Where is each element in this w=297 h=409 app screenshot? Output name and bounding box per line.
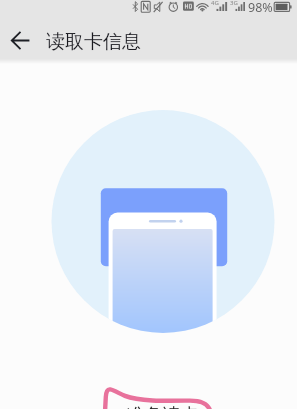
staticText: 准备读卡 <box>127 404 199 409</box>
button[interactable]: Back <box>1 21 39 59</box>
staticText: 98% <box>248 0 273 16</box>
staticText: 读取卡信息 <box>46 30 141 54</box>
staticText: 4G <box>211 0 219 7</box>
staticText: 3G <box>230 0 238 7</box>
